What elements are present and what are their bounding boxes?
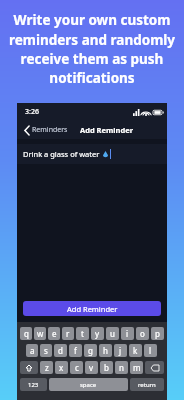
button[interactable]: a [26,344,38,357]
button[interactable]: Reminders [22,123,70,137]
button[interactable]: b [100,361,113,374]
staticText: h [103,345,108,356]
staticText: s [44,345,48,356]
button[interactable]: 123 [20,378,47,391]
button[interactable]: e [48,327,60,340]
staticText: f [74,345,77,356]
button[interactable]: i [121,327,134,340]
staticText: v [89,362,94,373]
button[interactable]: g [84,344,97,357]
staticText: p [155,328,160,339]
button[interactable]: o [136,327,149,340]
staticText: j [119,345,122,356]
staticText: Reminders [32,125,68,135]
button[interactable]: c [70,361,83,374]
button[interactable]: return [130,378,164,391]
staticText: Drink a glass of water [23,149,100,159]
button[interactable]: r [62,327,74,340]
button[interactable]: x [55,361,68,374]
button[interactable]: f [69,344,82,357]
button[interactable]: z [40,361,53,374]
staticText: a [30,345,35,356]
button[interactable]: w [34,327,46,340]
staticText: return [138,381,156,389]
button[interactable]: q [20,327,32,340]
button[interactable]: u [106,327,119,340]
staticText: i [126,328,129,339]
button[interactable]: Add Reminder [23,301,161,316]
staticText: 3:26 [25,107,39,117]
staticText: Add Reminder [67,304,118,314]
button[interactable]: d [54,344,67,357]
staticText: y [95,328,100,339]
staticText: k [133,345,138,356]
staticText: b [104,362,109,373]
button[interactable]: Drink a glass of water [17,144,167,164]
staticText: Write your own custom reminders and rand… [6,11,178,87]
staticText: n [119,362,124,373]
staticText: r [66,328,70,339]
staticText: e [52,328,57,339]
button[interactable]: space [49,378,128,391]
staticText: o [140,328,145,339]
button[interactable]: t [76,327,89,340]
staticText: x [59,362,64,373]
button[interactable]: p [151,327,164,340]
staticText: space [80,381,97,389]
button[interactable]: y [91,327,104,340]
button[interactable]: Shift [20,361,38,374]
button[interactable]: n [115,361,128,374]
button[interactable]: k [129,344,142,357]
button[interactable]: h [99,344,112,357]
staticText: 123 [28,381,39,389]
staticText: t [81,328,84,339]
button[interactable]: Backspace [145,361,164,374]
button[interactable]: v [85,361,98,374]
staticText: Add Reminder [80,125,134,135]
staticText: u [110,328,115,339]
button[interactable]: l [144,344,157,357]
button[interactable]: s [40,344,52,357]
staticText: c [75,362,79,373]
button[interactable]: j [114,344,127,357]
staticText: d [58,345,63,356]
staticText: m [133,362,141,373]
button[interactable]: m [130,361,143,374]
staticText: l [149,345,152,356]
staticText: w [37,328,44,339]
staticText: z [45,362,49,373]
staticText: g [88,345,93,356]
staticText: q [24,328,29,339]
